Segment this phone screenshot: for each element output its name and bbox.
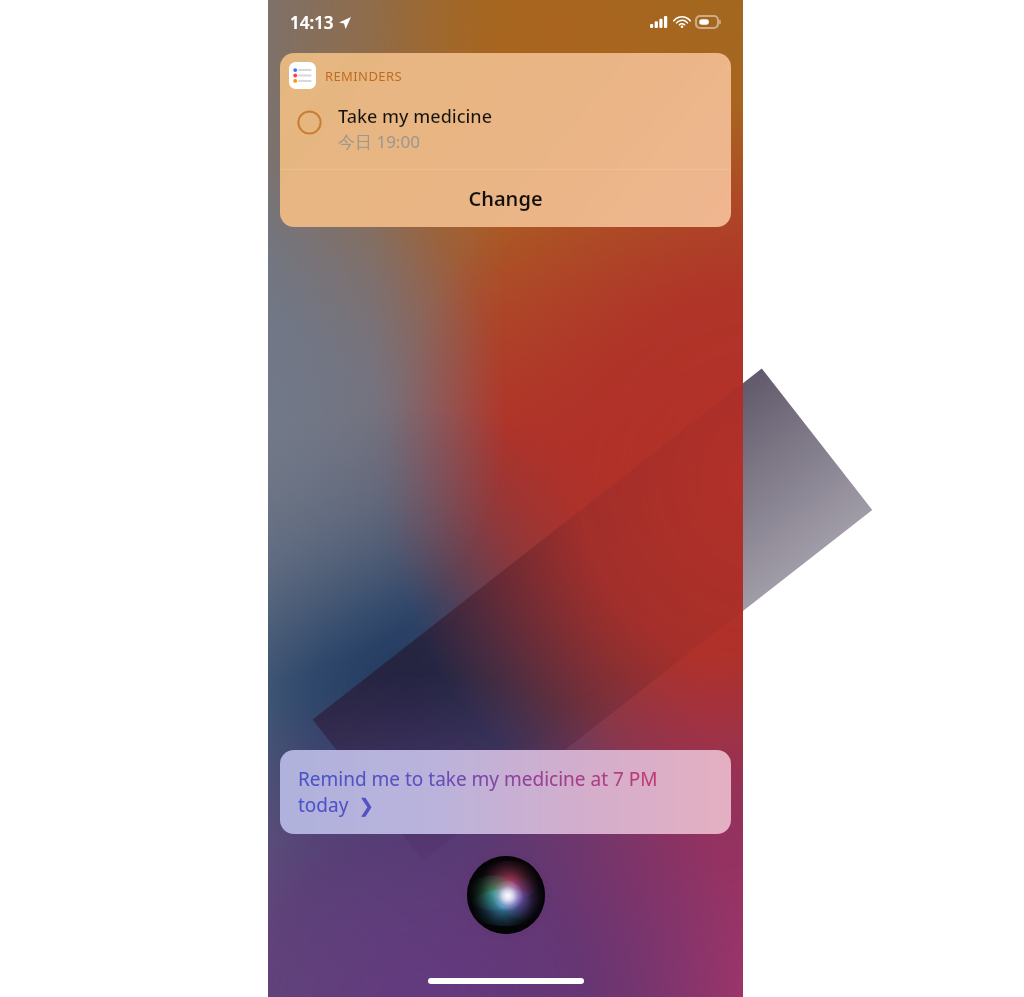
staticText: 14:13 [290,11,334,34]
button[interactable]: Siri [467,856,545,934]
staticText: Remind me to take my medicine at 7 PM to… [298,766,658,818]
staticText: 今日 19:00 [338,130,420,153]
button[interactable]: Remind me to take my medicine at 7 PM to… [280,750,731,834]
other: Mark complete [297,110,322,135]
button[interactable]: Mark complete [297,104,717,153]
staticText: REMINDERS [325,67,402,85]
staticText: Change [468,185,543,212]
button[interactable]: Change [280,170,731,227]
staticText: Take my medicine [338,104,492,129]
